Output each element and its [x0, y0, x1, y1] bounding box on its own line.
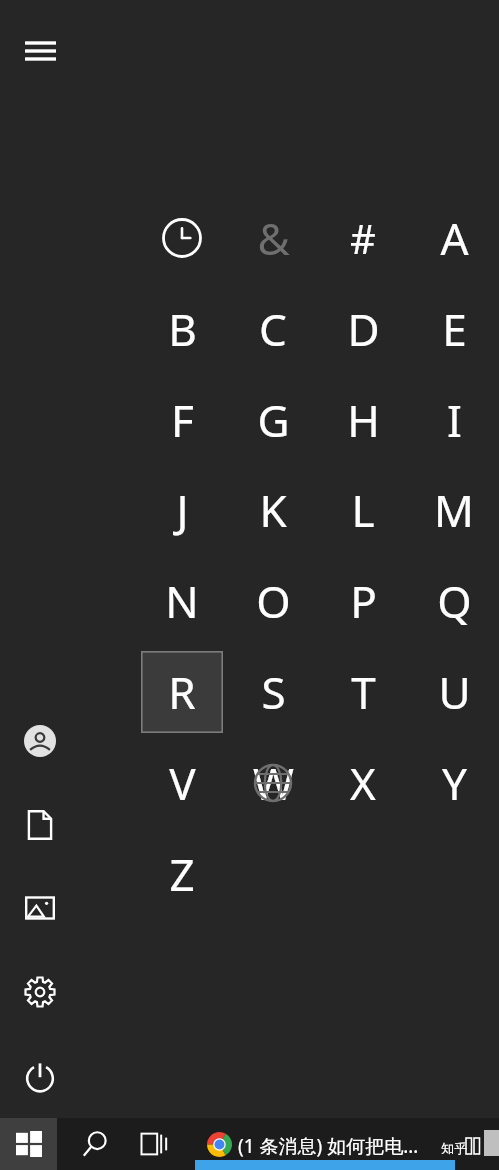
staticText: U [438, 662, 471, 722]
button[interactable]: G [232, 379, 314, 461]
staticText: J [176, 480, 189, 540]
staticText: P [350, 571, 377, 631]
staticText: 知乎 [441, 1140, 467, 1156]
button[interactable]: Power [12, 1049, 68, 1105]
button[interactable]: Search [70, 1118, 120, 1170]
staticText: S [261, 662, 286, 722]
button[interactable]: Documents [12, 797, 68, 853]
button[interactable]: P [322, 560, 404, 642]
button[interactable]: L [322, 469, 404, 551]
staticText: E [442, 299, 467, 359]
button[interactable]: S [232, 651, 314, 733]
staticText: X [350, 753, 376, 813]
staticText: Q [437, 571, 472, 631]
button[interactable]: Z [141, 833, 223, 915]
staticText: A [440, 208, 469, 268]
staticText: L [351, 480, 375, 540]
button[interactable]: Account [12, 713, 68, 769]
button[interactable]: T [322, 651, 404, 733]
button[interactable]: Recently added [141, 197, 223, 279]
button[interactable]: J [141, 469, 223, 551]
button[interactable]: U [413, 651, 495, 733]
staticText: W [253, 753, 294, 813]
button[interactable]: & [232, 197, 314, 279]
button[interactable]: Q [413, 560, 495, 642]
button[interactable]: K [232, 469, 314, 551]
button[interactable]: Menu [16, 32, 64, 70]
button[interactable]: V [141, 742, 223, 824]
button[interactable]: Pictures [12, 880, 68, 936]
button[interactable]: D [322, 288, 404, 370]
staticText: N [165, 571, 199, 631]
staticText: B [168, 299, 197, 359]
button[interactable]: M [413, 469, 495, 551]
staticText: Y [442, 753, 467, 813]
staticText: V [169, 753, 196, 813]
button[interactable]: A [413, 197, 495, 279]
button[interactable]: F [141, 379, 223, 461]
staticText: T [351, 662, 376, 722]
staticText: K [259, 480, 287, 540]
button[interactable]: I [413, 379, 495, 461]
staticText: (1 条消息) 如何把电… [238, 1133, 419, 1159]
staticText: I [447, 390, 462, 450]
button[interactable]: (1 条消息) 如何把电… [194, 1118, 459, 1170]
staticText: O [256, 571, 291, 631]
button[interactable]: H [322, 379, 404, 461]
staticText: M [434, 480, 474, 540]
staticText: & [257, 208, 290, 268]
staticText: G [257, 390, 290, 450]
button[interactable]: C [232, 288, 314, 370]
button[interactable]: Task view [130, 1118, 180, 1170]
staticText: D [347, 299, 380, 359]
button[interactable]: N [141, 560, 223, 642]
button[interactable]: Other [232, 742, 314, 824]
staticText: F [171, 390, 194, 450]
button[interactable]: B [141, 288, 223, 370]
button[interactable]: Start [0, 1118, 57, 1170]
button[interactable]: Settings [12, 964, 68, 1020]
staticText: C [259, 299, 287, 359]
staticText: R [168, 662, 196, 722]
staticText: H [347, 390, 380, 450]
button[interactable]: E [413, 288, 495, 370]
button[interactable]: W [232, 742, 314, 824]
button[interactable]: X [322, 742, 404, 824]
button[interactable]: # [322, 197, 404, 279]
button[interactable]: Y [413, 742, 495, 824]
staticText: Z [169, 844, 195, 904]
button[interactable]: O [232, 560, 314, 642]
staticText: # [350, 211, 376, 265]
button[interactable]: R [141, 651, 223, 733]
